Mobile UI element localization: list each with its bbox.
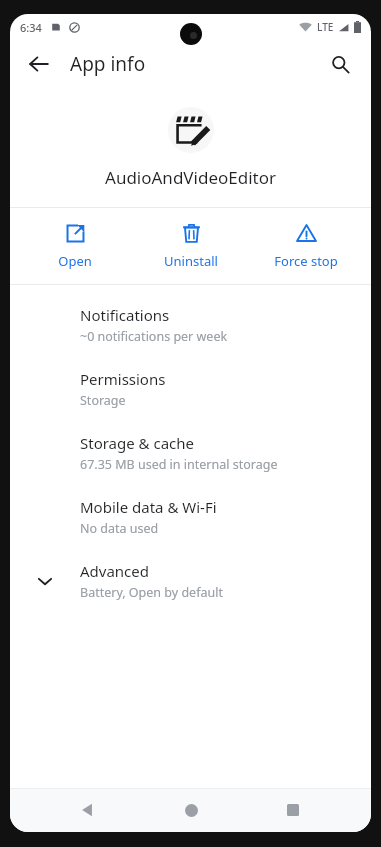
button[interactable]: Open <box>25 217 125 276</box>
staticText: Open <box>58 252 92 270</box>
staticText: 67.35 MB used in internal storage <box>80 456 278 473</box>
button[interactable]: Recents <box>269 788 317 832</box>
staticText: Uninstall <box>164 252 218 270</box>
staticText: Force stop <box>274 252 338 270</box>
staticText: 6:34 <box>20 20 42 35</box>
staticText: No data used <box>80 520 159 537</box>
button[interactable]: Force stop <box>256 217 356 276</box>
button[interactable]: Back <box>18 43 60 85</box>
staticText: Permissions <box>80 369 166 389</box>
button[interactable]: Notifications <box>10 293 371 357</box>
staticText: App info <box>70 51 146 77</box>
staticText: Mobile data & Wi-Fi <box>80 497 217 517</box>
staticText: Advanced <box>80 561 150 581</box>
staticText: Storage <box>80 392 126 409</box>
staticText: Notifications <box>80 305 170 325</box>
button[interactable]: Mobile data & Wi-Fi <box>10 485 371 549</box>
button[interactable]: Back <box>64 788 112 832</box>
staticText: Storage & cache <box>80 433 195 453</box>
staticText: LTE <box>317 20 334 34</box>
button[interactable]: Uninstall <box>141 217 241 276</box>
button[interactable]: Home <box>167 788 215 832</box>
button[interactable]: Storage & cache <box>10 421 371 485</box>
staticText: Battery, Open by default <box>80 584 223 601</box>
button[interactable]: Advanced <box>10 549 371 613</box>
button[interactable]: Search <box>319 43 361 85</box>
staticText: ~0 notifications per week <box>80 328 228 345</box>
staticText: AudioAndVideoEditor <box>105 166 276 189</box>
button[interactable]: Permissions <box>10 357 371 421</box>
